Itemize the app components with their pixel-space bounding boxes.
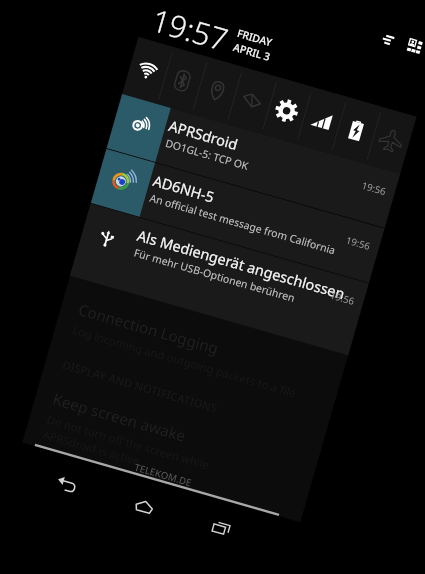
staticText: 19:57 <box>147 0 234 60</box>
staticText: APRSdroid is active <box>41 426 142 469</box>
button[interactable]: Als Mediengerät angeschlossen <box>70 204 369 355</box>
staticText: APRSdroid <box>166 116 241 155</box>
button[interactable]: APRSdroid <box>107 94 400 228</box>
button[interactable]: Back <box>43 461 91 508</box>
button[interactable]: Recent apps <box>198 505 245 553</box>
button[interactable]: Airplane mode <box>365 107 416 174</box>
staticText: 19:56 <box>329 288 356 307</box>
staticText: Connection Logging <box>76 299 221 359</box>
staticText: Als Mediengerät angeschlossen <box>135 225 347 304</box>
staticText: 19:56 <box>344 233 372 252</box>
staticText: APRIL 3 <box>231 40 273 64</box>
staticText: 19:56 <box>360 178 388 198</box>
staticText: Für mehr USB-Optionen berühren <box>132 245 297 305</box>
button[interactable]: Flashlight <box>226 67 277 134</box>
staticText: An official test message from California <box>148 190 338 258</box>
button[interactable]: AD6NH-5 <box>91 149 384 283</box>
staticText: AD6NH-5 <box>151 171 217 207</box>
staticText: FRIDAY <box>235 26 274 50</box>
button[interactable]: Quick settings <box>402 35 425 61</box>
button[interactable]: Wi-Fi <box>122 37 173 104</box>
staticText: DO1GL-5: TCP OK <box>164 136 250 173</box>
button[interactable]: Settings <box>261 77 312 144</box>
staticText: Do not turn off the screen while <box>45 412 211 473</box>
staticText: TELEKOM.DE <box>133 460 194 489</box>
button[interactable]: Battery <box>331 97 382 164</box>
button[interactable]: Location <box>192 57 243 124</box>
button[interactable]: Notifications <box>375 27 401 53</box>
staticText: Log incoming and outgoing packets to a f… <box>71 322 298 401</box>
button[interactable]: Cellular <box>296 87 347 154</box>
staticText: Keep screen awake <box>50 389 188 447</box>
button[interactable]: Bluetooth <box>157 47 208 114</box>
button[interactable]: Home <box>120 483 168 530</box>
